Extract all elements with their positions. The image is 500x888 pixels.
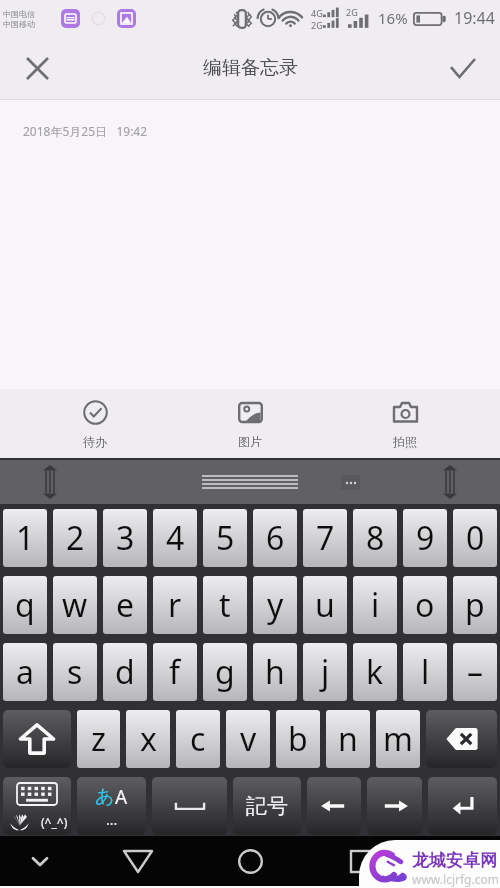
staticText: u (315, 583, 335, 627)
button[interactable]: n (326, 710, 370, 768)
staticText: 2G (346, 6, 358, 18)
staticText: s (67, 650, 83, 694)
button[interactable]: 6 (253, 509, 297, 567)
button[interactable]: b (276, 710, 320, 768)
staticText: 6 (266, 516, 285, 560)
button[interactable]: Home (226, 837, 274, 885)
staticText: 4G (311, 7, 323, 19)
staticText: j (321, 650, 330, 694)
button[interactable]: r (153, 576, 197, 634)
staticText: 16% (378, 8, 408, 28)
staticText: b (288, 717, 308, 761)
staticText: i (371, 583, 380, 627)
button[interactable]: 5 (203, 509, 247, 567)
staticText: 待办 (83, 434, 107, 449)
staticText: 0 (466, 516, 485, 560)
staticText: 中国电信 (3, 9, 35, 19)
button[interactable]: 2 (53, 509, 97, 567)
button[interactable]: f (153, 643, 197, 701)
staticText: z (91, 717, 107, 761)
button[interactable]: c (176, 710, 220, 768)
button[interactable]: Language (77, 777, 146, 835)
button[interactable]: o (403, 576, 447, 634)
button[interactable]: w (53, 576, 97, 634)
staticText: 图片 (238, 434, 262, 449)
staticText: A (115, 784, 128, 810)
button[interactable]: 7 (303, 509, 347, 567)
button[interactable]: 3 (103, 509, 147, 567)
button[interactable]: Back (114, 837, 162, 885)
button[interactable]: 拍照 (353, 389, 457, 458)
staticText: c (190, 717, 206, 761)
button[interactable]: i (353, 576, 397, 634)
staticText: 19:44 (454, 7, 495, 29)
button[interactable]: p (453, 576, 497, 634)
button[interactable]: m (376, 710, 420, 768)
button[interactable]: v (226, 710, 270, 768)
button[interactable]: Left (307, 777, 361, 835)
button[interactable]: 8 (353, 509, 397, 567)
button[interactable]: 4 (153, 509, 197, 567)
button[interactable]: 待办 (43, 389, 147, 458)
staticText: 4 (166, 516, 185, 560)
staticText: 7 (316, 516, 335, 560)
staticText: 5 (216, 516, 235, 560)
staticText: 2018年5月25日 19:42 (23, 123, 148, 139)
button[interactable]: 9 (403, 509, 447, 567)
button[interactable]: g (203, 643, 247, 701)
staticText: x (140, 717, 157, 761)
staticText: k (366, 650, 384, 694)
button[interactable]: 0 (453, 509, 497, 567)
button[interactable]: e (103, 576, 147, 634)
staticText: e (116, 583, 135, 627)
button[interactable]: Enter (428, 777, 497, 835)
staticText: t (219, 583, 231, 627)
button[interactable]: Space (152, 777, 227, 835)
button[interactable]: z (77, 710, 120, 768)
staticText: o (415, 583, 435, 627)
button[interactable]: d (103, 643, 147, 701)
button[interactable]: s (53, 643, 97, 701)
staticText: ... (106, 810, 118, 829)
staticText: p (465, 583, 485, 627)
button[interactable]: t (203, 576, 247, 634)
staticText: y (267, 583, 284, 627)
button[interactable]: More (341, 475, 360, 490)
button[interactable]: 图片 (198, 389, 302, 458)
button[interactable]: Shift (3, 710, 71, 768)
staticText: 中国移动 (3, 19, 35, 29)
button[interactable]: u (303, 576, 347, 634)
staticText: r (168, 583, 182, 627)
button[interactable]: q (3, 576, 47, 634)
staticText: 8 (366, 516, 385, 560)
button[interactable]: – (453, 643, 497, 701)
staticText: 3 (116, 516, 135, 560)
button[interactable]: Close (16, 47, 58, 89)
button[interactable]: y (253, 576, 297, 634)
button[interactable]: Hide keyboard (18, 839, 62, 883)
button[interactable]: Done (442, 47, 484, 89)
staticText: f (169, 650, 181, 694)
staticText: w (62, 583, 88, 627)
button[interactable]: x (126, 710, 170, 768)
button[interactable]: Switch keyboard (3, 777, 71, 835)
button[interactable]: j (303, 643, 347, 701)
button[interactable]: h (253, 643, 297, 701)
staticText: www.lcjrfg.com (412, 871, 499, 887)
button[interactable]: l (403, 643, 447, 701)
button[interactable]: a (3, 643, 47, 701)
staticText: 2 (66, 516, 85, 560)
button[interactable]: 記号 (233, 777, 301, 835)
staticText: 9 (416, 516, 435, 560)
button[interactable]: Recents (338, 837, 386, 885)
button[interactable]: 1 (3, 509, 47, 567)
staticText: 龙城安卓网 (412, 850, 497, 871)
button[interactable]: Right (367, 777, 422, 835)
button[interactable]: Backspace (426, 710, 497, 768)
button[interactable]: k (353, 643, 397, 701)
staticText: q (15, 583, 35, 627)
staticText: 拍照 (393, 434, 417, 449)
staticText: 1 (16, 516, 35, 560)
staticText: l (421, 650, 430, 694)
staticText: 記号 (246, 793, 288, 819)
